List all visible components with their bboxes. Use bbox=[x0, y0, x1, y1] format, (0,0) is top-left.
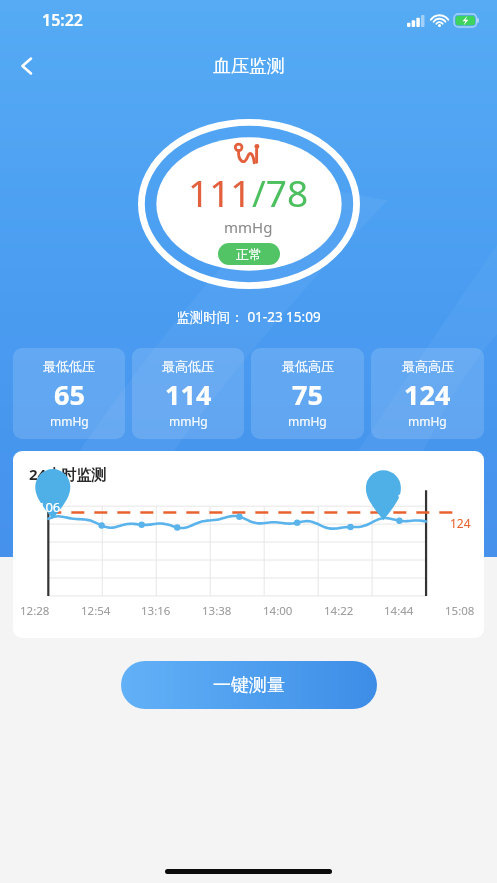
staticText: 106 bbox=[38, 498, 61, 516]
staticText: 血压监测 bbox=[213, 55, 285, 78]
staticText: 65 bbox=[54, 376, 85, 413]
staticText: 13:16 bbox=[141, 603, 171, 619]
staticText: 124 bbox=[450, 515, 471, 531]
button[interactable]: 正常 bbox=[218, 243, 280, 265]
staticText: mmHg bbox=[50, 413, 89, 429]
button[interactable]: 最高高压 bbox=[371, 348, 484, 439]
staticText: 最高低压 bbox=[162, 358, 214, 374]
staticText: 最低高压 bbox=[282, 358, 334, 374]
staticText: 15:08 bbox=[445, 603, 475, 619]
staticText: 111 bbox=[188, 167, 252, 217]
staticText: 最低低压 bbox=[43, 358, 95, 374]
staticText: 14:00 bbox=[263, 603, 293, 619]
button[interactable]: Back bbox=[4, 43, 50, 89]
staticText: mmHg bbox=[169, 413, 208, 429]
staticText: mmHg bbox=[288, 413, 327, 429]
staticText: 一键测量 bbox=[213, 674, 285, 697]
button[interactable]: 最低低压 bbox=[13, 348, 125, 439]
staticText: 12:54 bbox=[81, 603, 111, 619]
button[interactable]: 一键测量 bbox=[121, 661, 377, 709]
staticText: mmHg bbox=[224, 217, 273, 237]
staticText: 124 bbox=[397, 489, 420, 507]
staticText: 12:28 bbox=[20, 603, 50, 619]
staticText: 24小时监测 bbox=[29, 464, 107, 484]
staticText: 75 bbox=[292, 376, 323, 413]
staticText: 114 bbox=[165, 376, 212, 413]
staticText: 14:44 bbox=[384, 603, 414, 619]
staticText: 13:38 bbox=[202, 603, 232, 619]
staticText: 14:22 bbox=[324, 603, 354, 619]
staticText: 正常 bbox=[236, 246, 262, 262]
button[interactable]: 最低高压 bbox=[251, 348, 364, 439]
staticText: 监测时间： 01-23 15:09 bbox=[0, 308, 497, 326]
staticText: mmHg bbox=[408, 413, 447, 429]
button[interactable]: 最高低压 bbox=[132, 348, 244, 439]
staticText: 最高高压 bbox=[402, 358, 454, 374]
staticText: 124 bbox=[404, 376, 451, 413]
staticText: /78 bbox=[252, 167, 309, 217]
staticText: 15:22 bbox=[42, 9, 84, 31]
